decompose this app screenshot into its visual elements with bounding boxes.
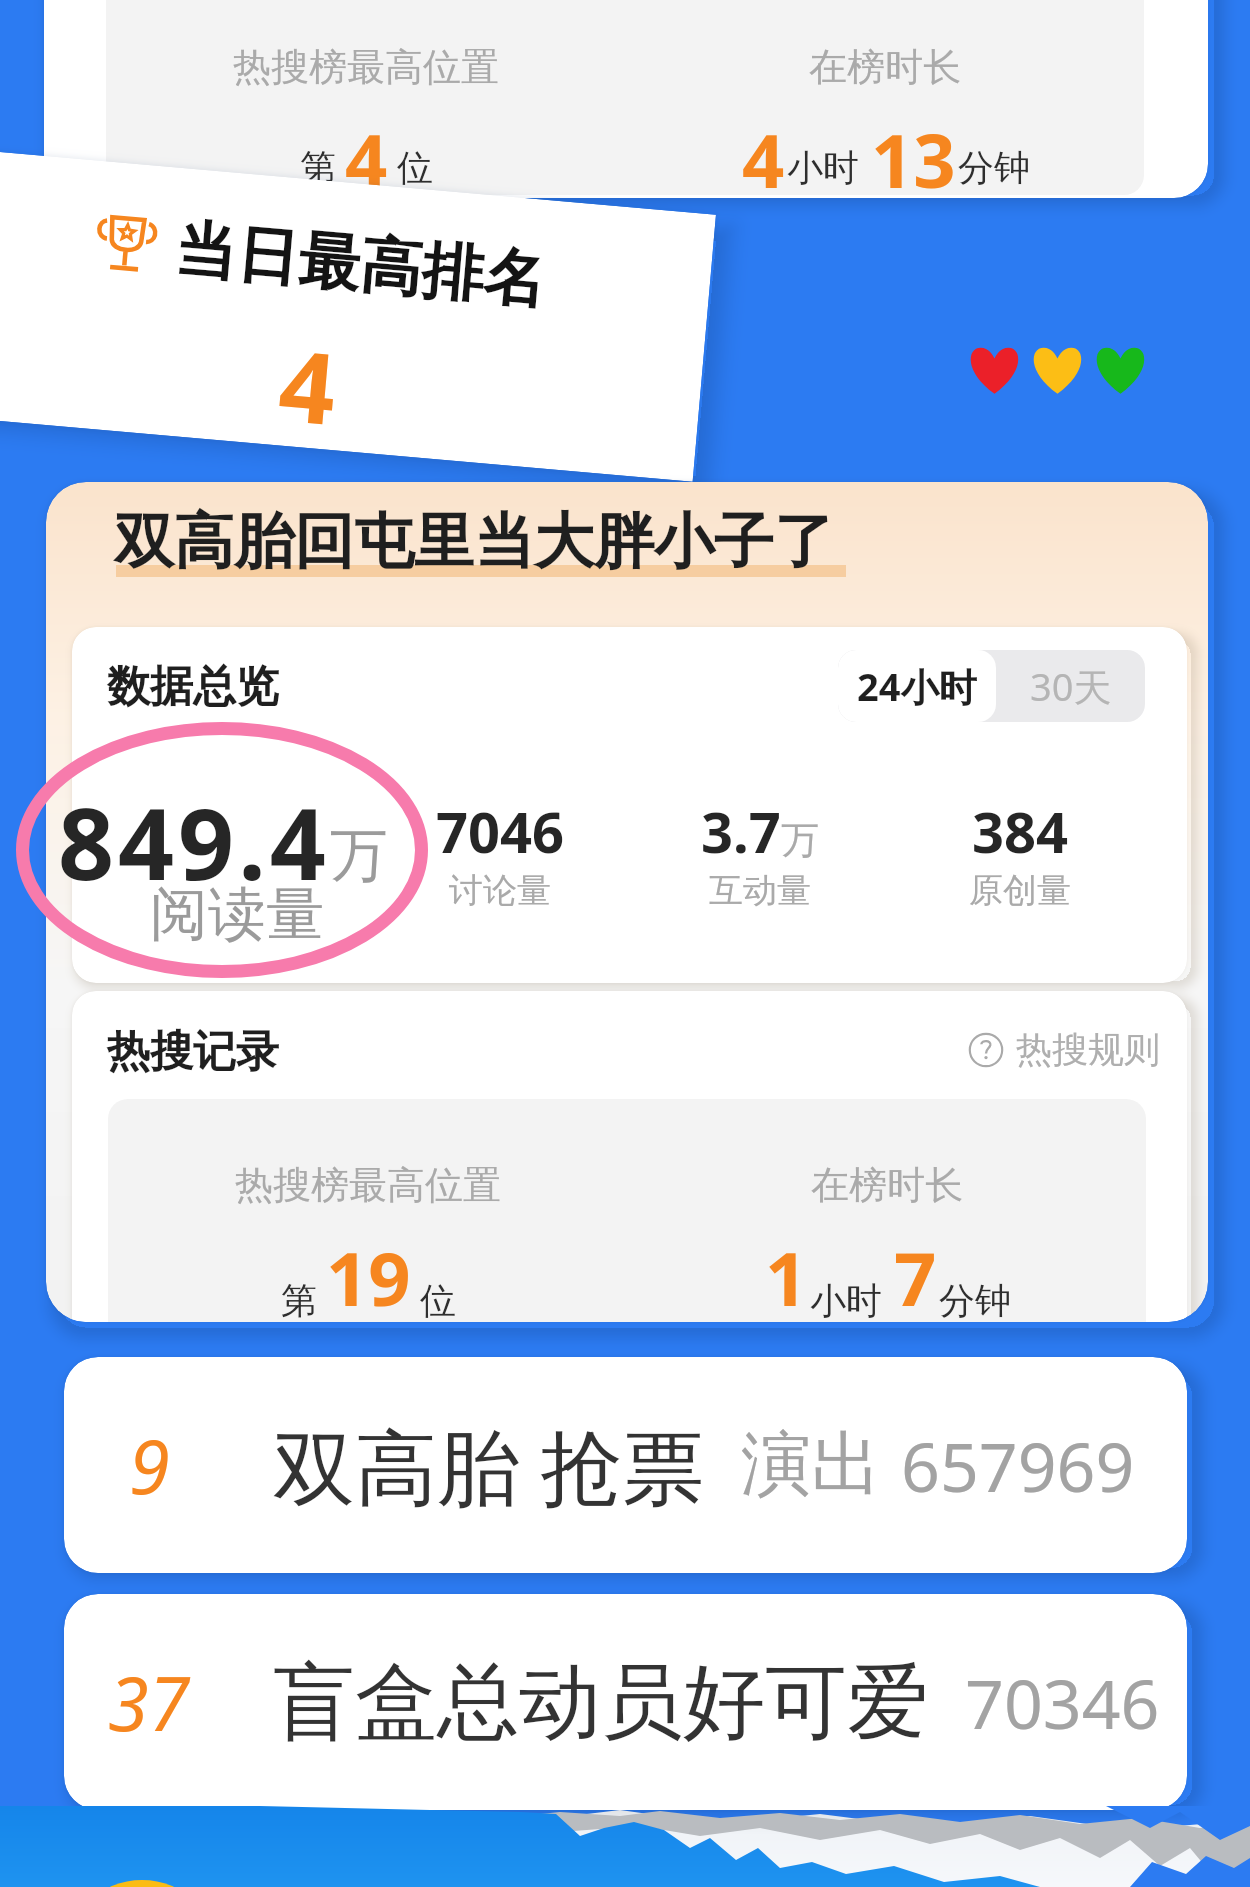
button[interactable]: Help xyxy=(968,1027,1160,1072)
staticText: 位 xyxy=(397,145,433,190)
staticText: 位 xyxy=(420,1278,456,1322)
button[interactable]: Trophy xyxy=(0,136,716,482)
staticText: 热搜榜最高位置 xyxy=(233,43,499,91)
staticText: 30天 xyxy=(1030,660,1112,712)
staticText: 数据总览 xyxy=(107,660,279,714)
staticText: 讨论量 xyxy=(449,869,551,912)
staticText: 互动量 xyxy=(709,869,811,912)
staticText: 19 xyxy=(326,1227,411,1322)
staticText: 在榜时长 xyxy=(811,1161,963,1209)
staticText: 657969 xyxy=(901,1419,1135,1512)
staticText: 分钟 xyxy=(939,1278,1011,1322)
other: Heart xyxy=(1026,337,1089,400)
staticText: 7046 xyxy=(436,793,565,869)
staticText: 万 xyxy=(330,819,388,892)
staticText: 原创量 xyxy=(969,869,1071,912)
other: Heart xyxy=(963,337,1026,400)
staticText: 小时 xyxy=(810,1278,882,1322)
staticText: 1 xyxy=(765,1227,808,1322)
staticText: 热搜记录 xyxy=(107,1025,279,1079)
staticText: 37 xyxy=(108,1652,190,1753)
staticText: 万 xyxy=(781,816,819,864)
staticText: 热搜榜最高位置 xyxy=(235,1161,501,1209)
staticText: 盲盒总动员好可爱 xyxy=(273,1651,929,1754)
other: Help xyxy=(968,1032,1004,1068)
staticText: 分钟 xyxy=(958,145,1030,190)
staticText: 4 xyxy=(274,316,342,450)
staticText: 热搜规则 xyxy=(1016,1027,1160,1072)
staticText: 4 xyxy=(345,109,388,195)
staticText: 4 xyxy=(742,109,785,195)
staticText: 849.4 xyxy=(58,775,330,908)
staticText: 3.7 xyxy=(701,793,781,869)
button[interactable]: 37 xyxy=(64,1594,1187,1810)
button[interactable]: 24小时 xyxy=(838,650,996,722)
staticText: 演出 xyxy=(741,1421,881,1509)
button[interactable]: 热搜榜最高位置 xyxy=(44,0,1208,198)
staticText: 双高胎回屯里当大胖小子了 xyxy=(114,504,834,580)
button[interactable]: 9 xyxy=(64,1357,1187,1573)
other: Heart xyxy=(1089,337,1152,400)
staticText: 第 xyxy=(300,145,336,190)
staticText: 小时 xyxy=(787,145,859,190)
staticText: 384 xyxy=(972,793,1069,869)
other: Trophy xyxy=(88,206,164,282)
staticText: 双高胎 抢票 xyxy=(273,1409,705,1521)
staticText: 70346 xyxy=(965,1656,1160,1749)
staticText: 24小时 xyxy=(857,660,977,712)
staticText: 当日最高排名 xyxy=(171,210,549,320)
staticText: 7 xyxy=(894,1227,937,1322)
staticText: 9 xyxy=(129,1415,170,1516)
staticText: 13 xyxy=(871,109,956,195)
button[interactable]: 30天 xyxy=(996,650,1145,722)
staticText: 在榜时长 xyxy=(809,43,961,91)
staticText: 第 xyxy=(281,1278,317,1322)
staticText: 阅读量 xyxy=(150,878,324,951)
